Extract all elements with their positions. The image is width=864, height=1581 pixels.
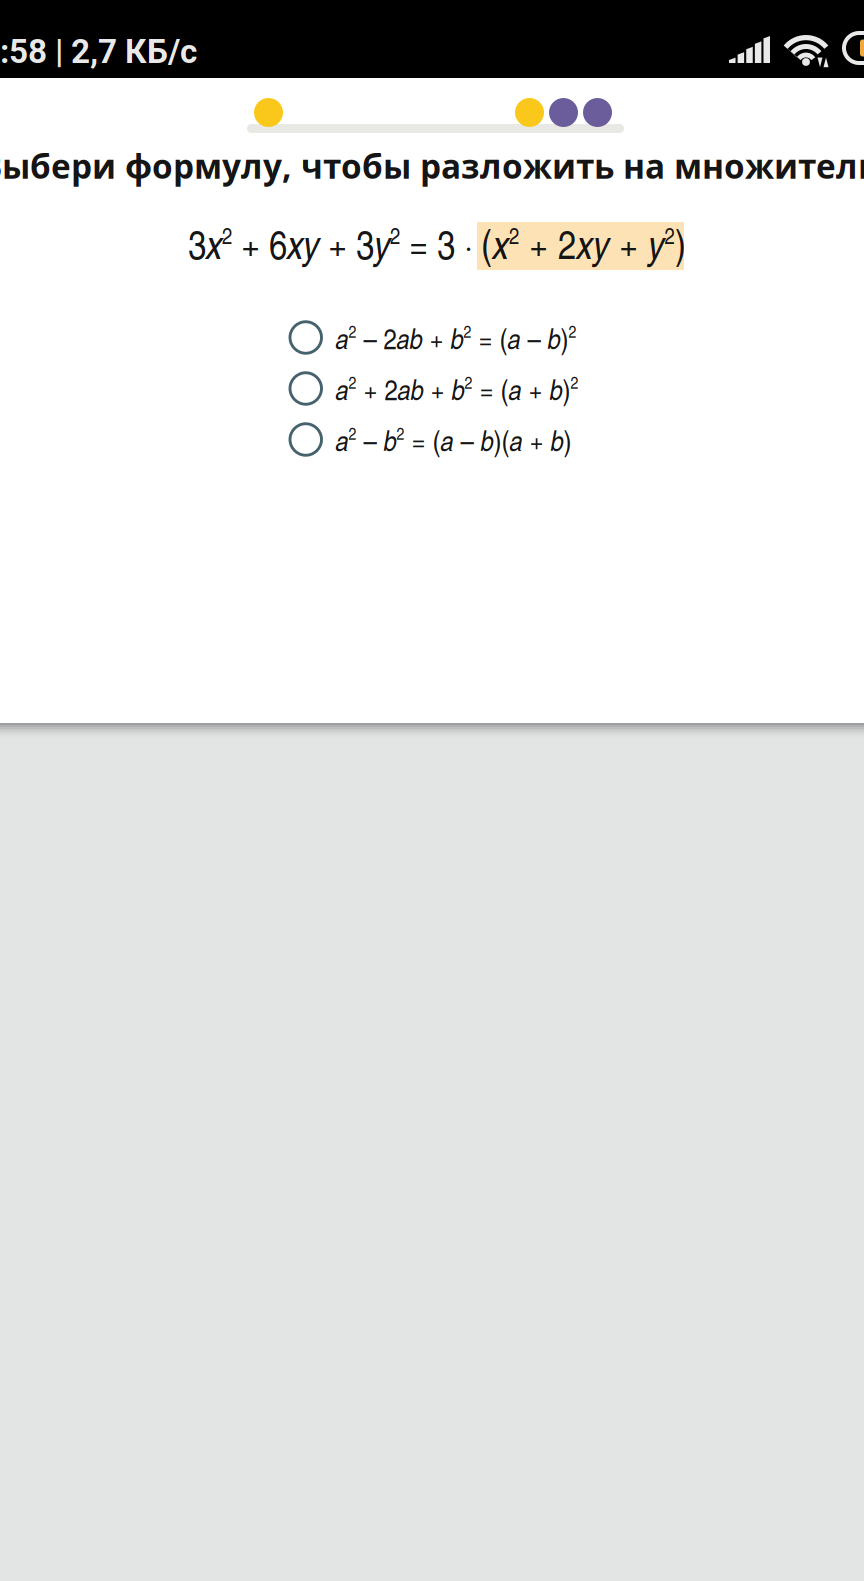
staticText: :58 | 2,7 КБ/с [0,32,197,71]
staticText: (x2 + 2xy + y2) [481,216,686,270]
staticText: Выбери формулу, чтобы разложить на множи… [0,143,864,188]
staticText: 3x2 + 6xy + 3y2 = 3 · [188,216,473,270]
staticText: a2 – 2ab + b2 = (a – b)2 [335,318,576,357]
button[interactable]: a² + 2ab + b² = (a + b)² [290,363,620,414]
button[interactable]: a² – 2ab + b² = (a – b)² [290,312,620,363]
staticText: a2 – b2 = (a – b)(a + b) [335,420,571,459]
button[interactable]: a² – b² = (a – b)(a + b) [290,414,620,465]
staticText: a2 + 2ab + b2 = (a + b)2 [335,369,578,408]
